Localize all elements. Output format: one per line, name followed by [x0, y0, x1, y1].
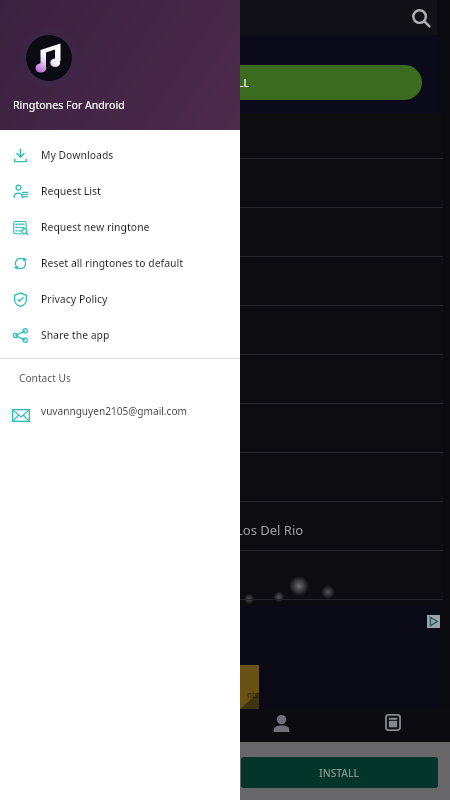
staticText: Ringtones For Android — [13, 98, 125, 112]
button[interactable] — [0, 354, 443, 403]
button[interactable] — [0, 207, 443, 256]
staticText: Share the app — [41, 328, 110, 342]
button[interactable]: INSTALL — [150, 65, 422, 100]
button[interactable]: Search — [407, 4, 435, 32]
button[interactable] — [0, 305, 443, 354]
staticText: INSTALL — [209, 76, 250, 90]
staticText: nts — [247, 689, 259, 700]
staticText: Request List — [41, 184, 102, 198]
button[interactable]: Request List — [0, 173, 240, 209]
staticText: Request new ringtone — [41, 220, 150, 234]
button[interactable] — [0, 158, 443, 207]
button[interactable]: Privacy Policy — [0, 281, 240, 317]
button[interactable]: Los Del Rio — [0, 501, 443, 550]
button[interactable] — [0, 256, 443, 305]
staticText: INSTALL — [319, 766, 360, 780]
staticText: vuvannguyen2105@gmail.com — [41, 404, 187, 418]
staticText: Reset all ringtones to default — [41, 256, 184, 270]
button[interactable]: vuvannguyen2105@gmail.com — [0, 397, 240, 425]
button[interactable] — [0, 452, 443, 501]
button[interactable]: My Downloads — [0, 137, 240, 173]
button[interactable]: nts — [228, 607, 437, 709]
staticText: My Downloads — [41, 148, 114, 162]
button[interactable]: Reset all ringtones to default — [0, 245, 240, 281]
button[interactable]: Ringtones For Android — [0, 0, 240, 130]
button[interactable]: Request new ringtone — [0, 209, 240, 245]
button[interactable]: Library — [370, 706, 416, 739]
staticText: Los Del Rio — [236, 521, 304, 539]
button[interactable]: INSTALL — [241, 757, 438, 788]
button[interactable]: Share the app — [0, 317, 240, 353]
staticText: Privacy Policy — [41, 292, 108, 306]
button[interactable] — [0, 403, 443, 452]
button[interactable] — [0, 113, 443, 158]
staticText: Contact Us — [19, 371, 71, 385]
button[interactable] — [0, 550, 443, 599]
button[interactable]: Profile — [258, 707, 304, 740]
